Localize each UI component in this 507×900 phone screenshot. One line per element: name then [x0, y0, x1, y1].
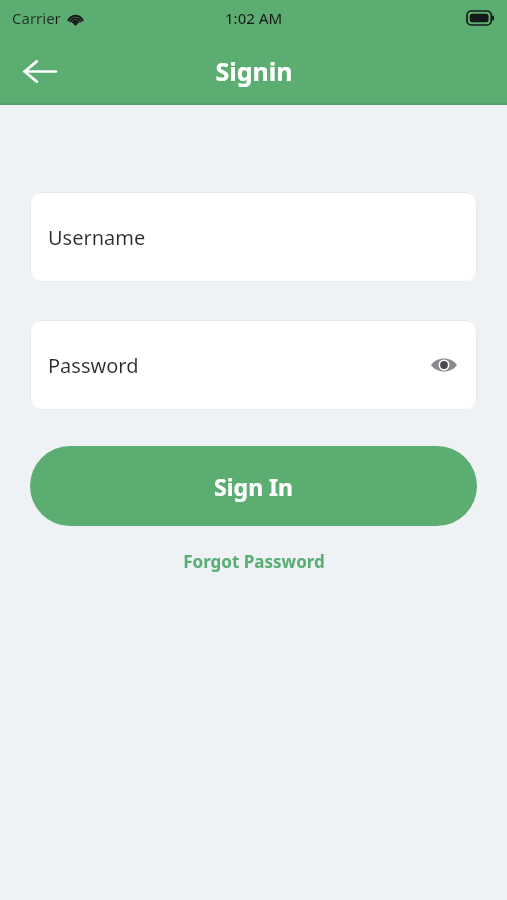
staticText: Signin [215, 54, 293, 88]
button[interactable]: Show password [427, 348, 461, 382]
staticText: 1:02 AM [225, 8, 283, 28]
button[interactable]: Username [30, 192, 477, 282]
button[interactable]: Back [14, 45, 66, 97]
staticText: Sign In [214, 471, 293, 502]
staticText: Username [48, 224, 146, 251]
button[interactable]: Password [30, 320, 477, 410]
button[interactable]: Forgot Password [177, 547, 331, 576]
staticText: Forgot Password [183, 550, 325, 573]
staticText: Password [48, 352, 139, 379]
button[interactable]: Sign In [30, 446, 477, 526]
staticText: Carrier [12, 8, 61, 28]
